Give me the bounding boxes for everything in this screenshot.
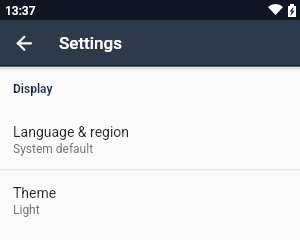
button[interactable]: Language & region bbox=[0, 109, 300, 169]
button[interactable]: Back bbox=[8, 28, 38, 58]
staticText: Theme bbox=[13, 185, 57, 201]
staticText: Display bbox=[13, 82, 53, 96]
other: Battery charging bbox=[288, 4, 296, 17]
staticText: System default bbox=[13, 142, 94, 156]
button[interactable]: Theme bbox=[0, 171, 300, 230]
staticText: Light bbox=[13, 203, 40, 217]
staticText: Language & region bbox=[13, 124, 130, 140]
staticText: Settings bbox=[59, 33, 122, 53]
other: Wi-Fi bbox=[268, 4, 283, 15]
staticText: 13:37 bbox=[5, 4, 36, 18]
